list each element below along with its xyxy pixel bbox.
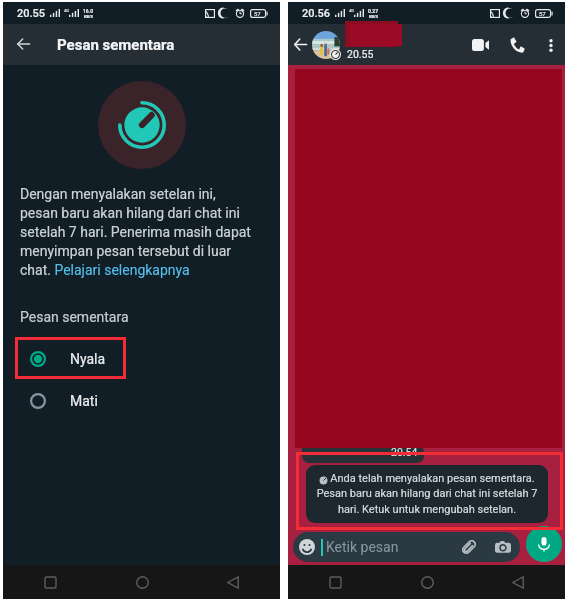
button[interactable]: Recents xyxy=(33,565,67,599)
staticText: 57 xyxy=(254,10,261,17)
staticText: 4G xyxy=(349,8,354,13)
button[interactable]: Back xyxy=(216,565,250,599)
staticText: Nyala xyxy=(70,351,106,367)
staticText: KB/S xyxy=(84,14,94,19)
button[interactable]: Camera xyxy=(494,538,512,556)
button[interactable]: Ketik pesan xyxy=(293,532,520,562)
staticText: 20.56 xyxy=(302,7,331,20)
staticText: 20.55 xyxy=(17,7,46,20)
button[interactable]: Nyala xyxy=(3,338,280,380)
staticText: Anda telah menyalakan pesan sementara. P… xyxy=(315,472,539,516)
button[interactable]: Back xyxy=(3,24,43,65)
button[interactable]: Mati xyxy=(3,380,280,422)
button[interactable]: Voice call xyxy=(500,28,534,62)
staticText: Pesan sementara xyxy=(20,309,129,325)
button[interactable]: Back xyxy=(288,24,312,65)
staticText: KB/S xyxy=(369,14,379,19)
button[interactable]: More options xyxy=(537,31,565,59)
button[interactable]: Anda telah menyalakan pesan sementara. P… xyxy=(306,465,548,523)
staticText: 0.27 xyxy=(368,8,379,14)
button[interactable]: Attach xyxy=(460,538,478,556)
staticText: 20.54 xyxy=(391,446,418,458)
staticText: Mati xyxy=(70,393,98,409)
button[interactable]: Home xyxy=(410,565,444,599)
button[interactable]: Voice message xyxy=(526,526,562,562)
button[interactable]: Home xyxy=(125,565,159,599)
button[interactable]: Video call xyxy=(463,28,497,62)
staticText: 4G xyxy=(64,8,69,13)
staticText: 20.55 xyxy=(347,48,374,60)
staticText: Ketik pesan xyxy=(326,539,399,555)
staticText: 16.0 xyxy=(83,8,94,14)
button[interactable]: Recents xyxy=(318,565,352,599)
staticText: Pesan sementara xyxy=(57,36,175,54)
staticText: 57 xyxy=(539,10,546,17)
button[interactable]: Back xyxy=(501,565,535,599)
staticText: Dengan menyalakan setelan ini, pesan bar… xyxy=(20,186,253,279)
